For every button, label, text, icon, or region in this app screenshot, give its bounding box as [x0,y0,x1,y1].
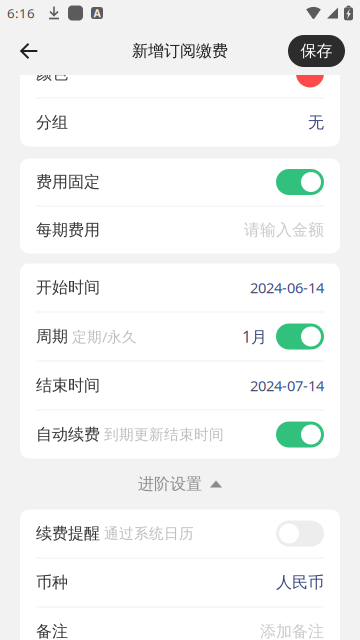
button[interactable]: 每期费用 [20,206,340,253]
staticText: 开始时间 [36,278,100,297]
button[interactable]: 续费提醒 [20,509,340,557]
staticText: 新增订阅缴费 [132,41,228,61]
button[interactable]: 币种 [20,558,340,606]
staticText: 定期/永久 [68,327,137,346]
button[interactable]: 自动续费 [20,410,340,458]
staticText: 分组 [36,113,68,132]
staticText: 添加备注 [260,622,324,640]
button[interactable]: 费用固定 [20,158,340,205]
staticText: A [93,6,100,20]
staticText: 无 [308,113,324,132]
staticText: 币种 [36,573,68,592]
staticText: 到期更新结束时间 [100,425,224,443]
staticText: 1月 [242,326,267,347]
button[interactable]: 进阶设置 [20,458,340,509]
button[interactable]: 分组 [20,98,340,146]
staticText: 结束时间 [36,376,100,395]
staticText: 进阶设置 [138,474,202,494]
staticText: 费用固定 [36,172,100,192]
staticText: 自动续费 [36,425,100,444]
staticText: 人民币 [276,573,324,592]
staticText: 周期 [36,327,68,346]
staticText: 保存 [300,41,332,61]
button[interactable]: 保存 [288,35,345,67]
button[interactable]: 结束时间 [20,361,340,409]
button[interactable]: 备注 [20,607,340,640]
staticText: 6:16 [7,4,35,22]
button[interactable]: 开始时间 [20,263,340,311]
button[interactable]: Back [9,31,49,71]
button[interactable]: 颜色 [20,49,340,97]
staticText: 2024-06-14 [250,278,324,297]
button[interactable]: 周期 [20,312,340,360]
staticText: 2024-07-14 [250,376,324,395]
staticText: 备注 [36,622,68,640]
staticText: 每期费用 [36,220,100,240]
staticText: 续费提醒 [36,524,100,543]
staticText: 请输入金额 [244,220,324,240]
staticText: 颜色 [36,64,68,83]
staticText: 通过系统日历 [100,524,194,542]
